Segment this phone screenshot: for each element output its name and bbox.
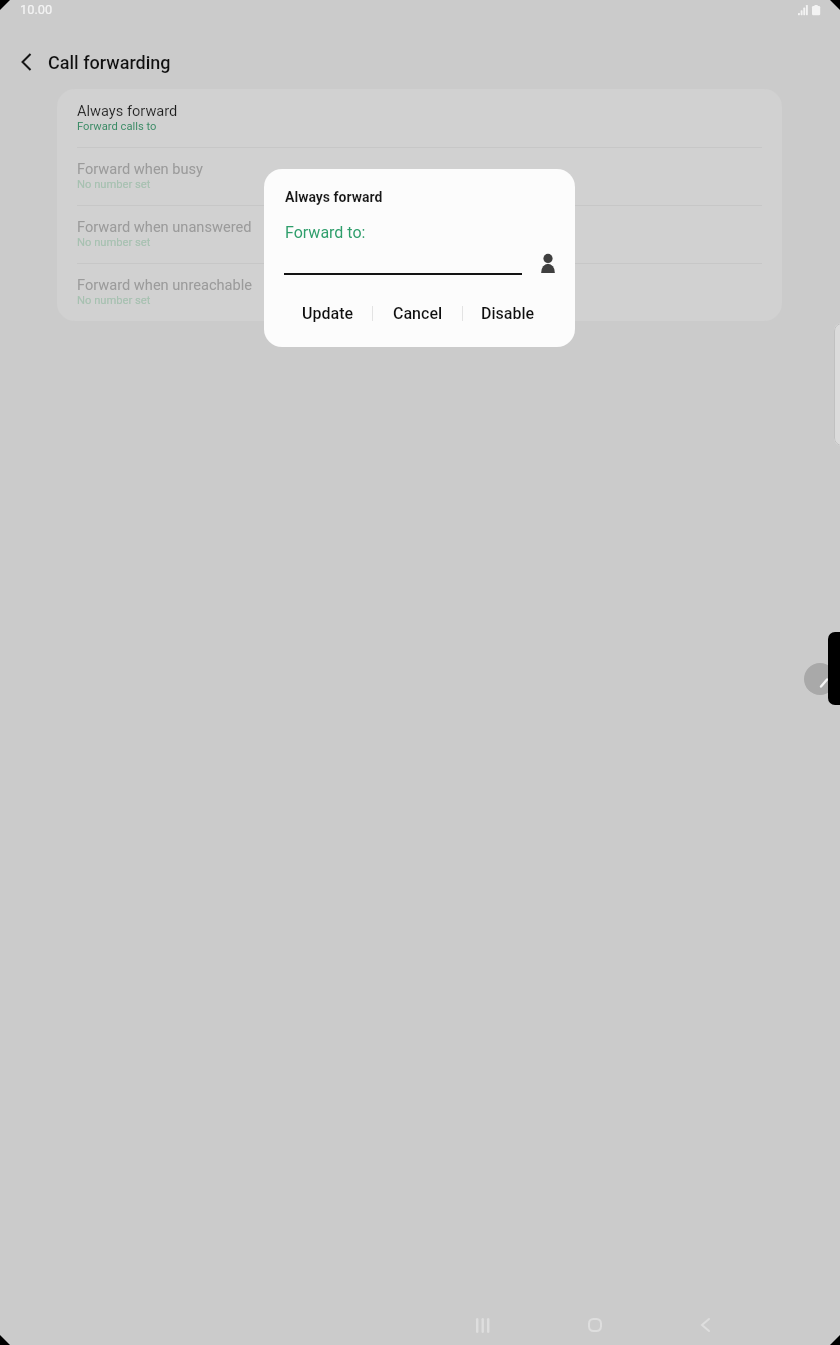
staticText: Cancel (393, 304, 443, 323)
staticText: Forward when busy (77, 160, 203, 177)
staticText: No number set (77, 236, 151, 249)
button[interactable]: Cancel (373, 298, 462, 328)
staticText: Forward when unanswered (77, 218, 252, 235)
staticText: No number set (77, 294, 151, 307)
staticText: Forward to: (285, 223, 366, 242)
button[interactable]: Navigate up (9, 44, 45, 80)
staticText: Always forward (285, 189, 383, 205)
staticText: Disable (481, 304, 535, 323)
button[interactable]: Update (284, 298, 372, 328)
button[interactable]: Home (571, 1301, 619, 1345)
button[interactable]: Always forward (57, 89, 782, 147)
staticText: Call forwarding (48, 52, 171, 73)
button[interactable]: Forward when busy (57, 147, 782, 205)
button[interactable]: Open edge panel (804, 663, 836, 695)
staticText: Forward when unreachable (77, 276, 252, 293)
staticText: Update (302, 304, 354, 323)
button[interactable]: Choose contact (534, 248, 562, 276)
button[interactable]: Forward when unreachable (57, 263, 782, 321)
button[interactable]: Forward when unanswered (57, 205, 782, 263)
staticText: Forward calls to (77, 120, 157, 133)
button[interactable]: Recent apps (459, 1301, 507, 1345)
button[interactable]: Disable (463, 298, 552, 328)
staticText: No number set (77, 178, 151, 191)
staticText: 10.00 (20, 2, 53, 17)
staticText: Always forward (77, 102, 178, 119)
